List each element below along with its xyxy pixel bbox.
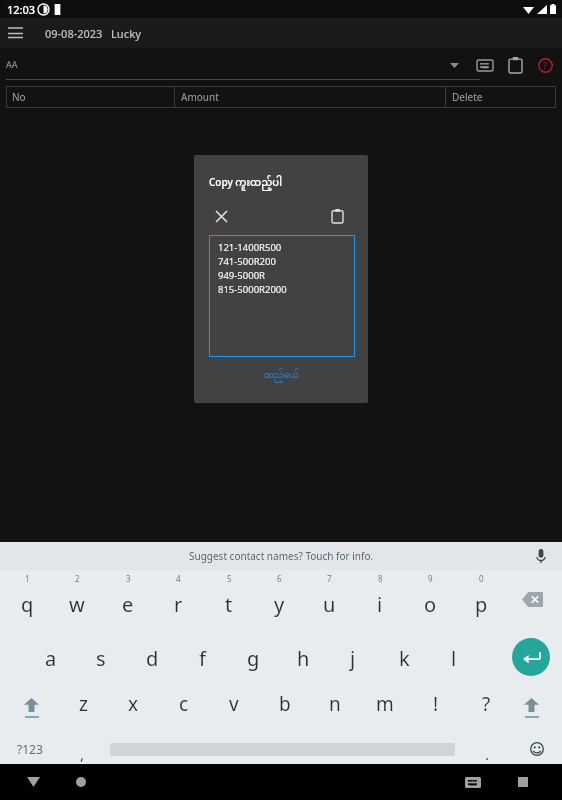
button[interactable]: z xyxy=(58,684,108,734)
staticText: 815-5000R2000 xyxy=(218,283,287,296)
button[interactable]: ! xyxy=(411,684,461,734)
button[interactable]: . xyxy=(470,744,504,764)
button[interactable]: Switch keyboard xyxy=(456,765,490,799)
staticText: 3 xyxy=(126,573,131,584)
button[interactable]: Enter xyxy=(512,638,550,676)
staticText: No xyxy=(12,90,26,104)
staticText: c xyxy=(179,691,189,717)
button[interactable]: b xyxy=(260,684,310,734)
staticText: f xyxy=(199,645,206,672)
staticText: k xyxy=(399,645,410,672)
button[interactable]: Backspace xyxy=(511,584,553,614)
button[interactable]: 3 xyxy=(103,570,153,632)
button[interactable]: d xyxy=(127,632,177,684)
staticText: e xyxy=(122,591,134,618)
button[interactable]: 7 xyxy=(304,570,354,632)
staticText: Suggest contact names? Touch for info. xyxy=(189,549,374,563)
button[interactable]: Voice input xyxy=(530,545,552,567)
button[interactable]: Help xyxy=(532,52,558,78)
staticText: m xyxy=(376,691,394,717)
button[interactable]: ထည့်မယ် xyxy=(241,363,321,387)
button[interactable]: Paste from clipboard xyxy=(326,205,348,227)
staticText: t xyxy=(225,591,233,618)
staticText: ! xyxy=(433,691,439,717)
staticText: h xyxy=(297,645,310,672)
button[interactable]: 2 xyxy=(52,570,102,632)
button[interactable]: 6 xyxy=(254,570,304,632)
button[interactable]: x xyxy=(108,684,158,734)
staticText: a xyxy=(45,645,57,672)
button[interactable]: ? xyxy=(461,684,511,734)
button[interactable]: 0 xyxy=(456,570,506,632)
button[interactable]: Emoji xyxy=(520,734,554,764)
staticText: y xyxy=(274,591,285,618)
button[interactable]: Paste xyxy=(502,52,528,78)
staticText: 0 xyxy=(479,573,484,584)
button[interactable]: a xyxy=(26,632,76,684)
staticText: , xyxy=(80,744,85,764)
staticText: 8 xyxy=(378,573,383,584)
button[interactable]: Menu xyxy=(0,18,30,48)
staticText: s xyxy=(96,645,106,672)
button[interactable]: Close xyxy=(210,205,232,227)
staticText: z xyxy=(79,691,88,717)
button[interactable]: f xyxy=(177,632,227,684)
staticText: . xyxy=(485,744,490,764)
staticText: g xyxy=(247,645,260,672)
staticText: ? xyxy=(482,691,491,717)
button[interactable]: h xyxy=(278,632,328,684)
staticText: 9 xyxy=(428,573,433,584)
staticText: d xyxy=(146,645,159,672)
button[interactable]: l xyxy=(429,632,479,684)
staticText: ?123 xyxy=(17,741,43,757)
staticText: ထည့်မယ် xyxy=(264,368,299,383)
button[interactable]: Keyboard xyxy=(472,52,498,78)
staticText: 7 xyxy=(327,573,332,584)
staticText: AA xyxy=(6,58,18,70)
staticText: i xyxy=(377,591,383,618)
button[interactable]: 8 xyxy=(355,570,405,632)
staticText: 1 xyxy=(25,573,30,584)
button[interactable]: Recents xyxy=(506,765,540,799)
button[interactable]: Dropdown xyxy=(442,53,466,77)
staticText: 2 xyxy=(75,573,80,584)
staticText: Copy ကူးထည့်ပါ xyxy=(209,173,282,195)
staticText: u xyxy=(323,591,336,618)
button[interactable]: 5 xyxy=(204,570,254,632)
staticText: 4 xyxy=(176,573,181,584)
button[interactable]: Home xyxy=(64,765,98,799)
button[interactable]: ?123 xyxy=(4,734,56,764)
staticText: 09-08-2023 xyxy=(45,26,103,41)
staticText: Lucky xyxy=(111,26,142,41)
staticText: 6 xyxy=(277,573,282,584)
staticText: x xyxy=(128,691,139,717)
button[interactable]: k xyxy=(379,632,429,684)
button[interactable]: g xyxy=(228,632,278,684)
button[interactable]: Back xyxy=(16,765,50,799)
staticText: 741-500R200 xyxy=(218,255,276,268)
button[interactable]: 1 xyxy=(2,570,52,632)
button[interactable]: Shift xyxy=(508,688,554,728)
staticText: v xyxy=(229,691,239,717)
staticText: 5 xyxy=(227,573,232,584)
button[interactable]: , xyxy=(62,744,102,764)
button[interactable]: Shift xyxy=(8,688,54,728)
button[interactable]: m xyxy=(360,684,410,734)
staticText: ? xyxy=(543,59,547,71)
staticText: o xyxy=(424,591,437,618)
button[interactable]: j xyxy=(328,632,378,684)
button[interactable]: n xyxy=(310,684,360,734)
staticText: Amount xyxy=(181,90,219,104)
staticText: w xyxy=(69,591,85,618)
staticText: q xyxy=(21,591,34,618)
staticText: n xyxy=(329,691,341,717)
staticText: 949-5000R xyxy=(218,269,266,282)
button[interactable]: s xyxy=(76,632,126,684)
button[interactable]: c xyxy=(159,684,209,734)
staticText: p xyxy=(475,591,488,618)
button[interactable]: 4 xyxy=(153,570,203,632)
button[interactable]: 9 xyxy=(405,570,455,632)
staticText: j xyxy=(350,645,356,672)
button[interactable]: v xyxy=(209,684,259,734)
